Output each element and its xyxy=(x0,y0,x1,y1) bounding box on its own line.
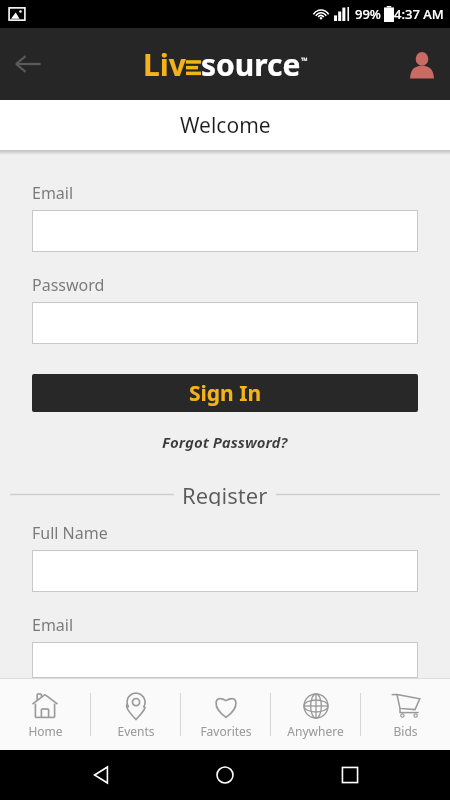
staticText: Home xyxy=(28,723,63,739)
button[interactable]: Favorites xyxy=(181,679,270,750)
button[interactable]: Sign In xyxy=(32,374,418,412)
staticText: Welcome xyxy=(180,111,271,140)
staticText: Favorites xyxy=(200,723,252,739)
staticText: Register xyxy=(182,480,268,506)
staticText: Bids xyxy=(393,723,418,739)
staticText: Email xyxy=(32,182,74,204)
button[interactable] xyxy=(32,302,418,344)
button[interactable]: Events xyxy=(91,679,180,750)
staticText: Full Name xyxy=(32,522,108,544)
button[interactable]: Home xyxy=(201,751,249,799)
button[interactable]: Back xyxy=(0,36,56,92)
button[interactable] xyxy=(32,550,418,592)
staticText: ™ xyxy=(301,54,308,66)
button[interactable]: Bids xyxy=(361,679,450,750)
staticText: Events xyxy=(117,723,155,739)
button[interactable]: Profile xyxy=(394,36,450,92)
staticText: 4:37 AM xyxy=(394,5,444,23)
staticText: Anywhere xyxy=(287,723,344,739)
button[interactable] xyxy=(32,642,418,678)
staticText: Email xyxy=(32,614,74,636)
staticText: source xyxy=(201,44,301,85)
button[interactable] xyxy=(32,210,418,252)
staticText: Sign In xyxy=(189,379,262,408)
button[interactable]: Forgot Password? xyxy=(154,430,296,454)
staticText: Password xyxy=(32,274,105,296)
staticText: 99% xyxy=(355,5,381,23)
button[interactable]: Anywhere xyxy=(271,679,360,750)
button[interactable]: Back xyxy=(77,751,125,799)
staticText: Liv xyxy=(143,44,186,85)
button[interactable]: Home xyxy=(0,679,90,750)
staticText: Forgot Password? xyxy=(162,432,288,452)
button[interactable]: Recents xyxy=(326,751,374,799)
